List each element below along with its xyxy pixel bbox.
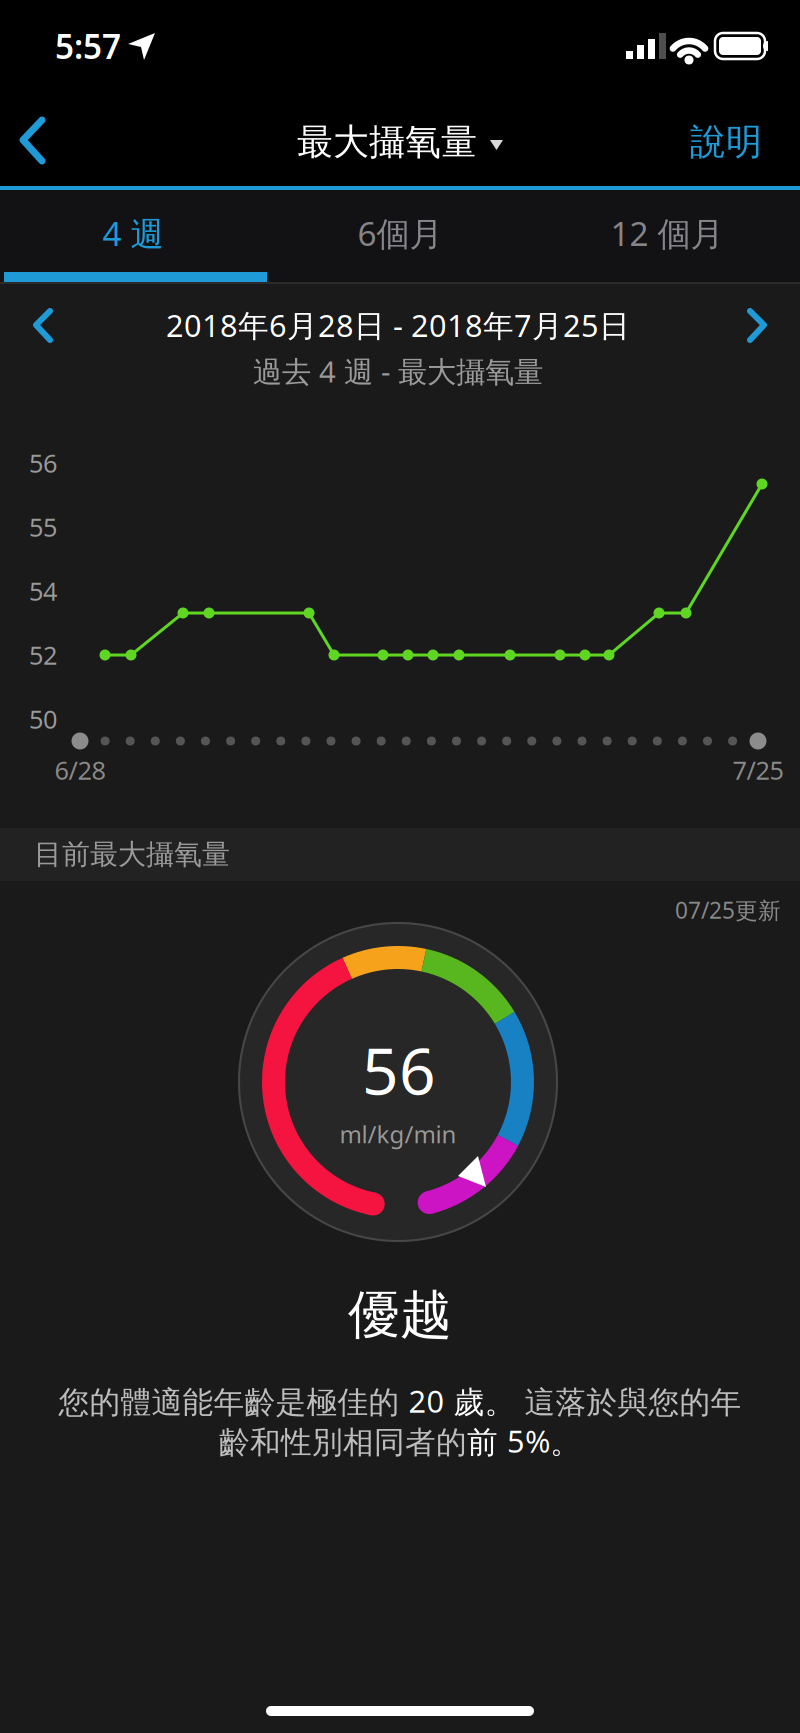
staticText: ml/kg/min	[339, 1118, 456, 1150]
staticText: 說明	[690, 120, 762, 164]
staticText: 齡和性別相同者的	[219, 1424, 467, 1461]
button[interactable]: 6個月	[0, 0, 800, 1733]
staticText: 5%	[507, 1421, 550, 1461]
staticText: 優越	[348, 1283, 452, 1347]
staticText: 07/25更新	[675, 895, 781, 925]
staticText: 50	[29, 702, 57, 736]
staticText: 56	[362, 1027, 436, 1112]
button[interactable]: 12 個月	[0, 0, 800, 1733]
staticText: 。	[550, 1424, 581, 1461]
staticText: 6/28	[54, 753, 105, 787]
staticText: 5:57	[55, 24, 121, 68]
staticText: 4 週	[102, 211, 163, 255]
staticText: 52	[29, 638, 57, 672]
button[interactable]: 最大攝氧量	[0, 0, 800, 1733]
staticText: 12 個月	[610, 211, 723, 255]
staticText: 您的體適能年齡是極佳的	[58, 1384, 408, 1421]
staticText: 56	[29, 446, 57, 480]
staticText: 前	[467, 1424, 507, 1461]
staticText: 過去 4 週 - 最大攝氧量	[253, 351, 543, 390]
staticText: 7/25	[732, 753, 783, 787]
staticText: 歲。	[444, 1384, 515, 1421]
staticText: 最大攝氧量	[297, 120, 477, 164]
button[interactable]: 4 週	[0, 0, 800, 1733]
staticText: 54	[29, 574, 57, 608]
staticText: 目前最大攝氧量	[34, 837, 230, 872]
staticText: 這落於與您的年	[515, 1384, 741, 1421]
button[interactable]: Next period	[0, 0, 800, 1733]
button[interactable]: Previous period	[0, 0, 800, 1733]
staticText: 20	[408, 1381, 444, 1421]
staticText: 6個月	[357, 211, 442, 255]
button[interactable]: 說明	[0, 0, 800, 1733]
staticText: 2018年6月28日 - 2018年7月25日	[166, 305, 630, 345]
staticText: 55	[29, 510, 57, 544]
button[interactable]: Back	[0, 0, 800, 1733]
